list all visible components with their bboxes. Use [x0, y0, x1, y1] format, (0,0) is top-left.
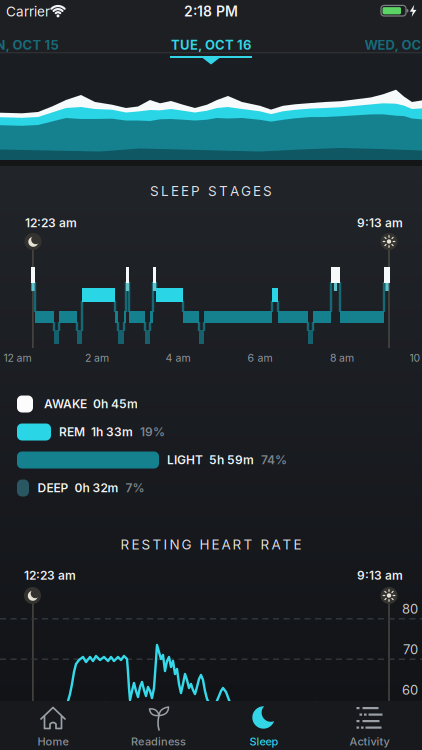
staticText: DEEP 0h 32m: [37, 481, 118, 495]
staticText: 2 am: [85, 352, 109, 364]
staticText: Activity: [349, 735, 389, 748]
button[interactable]: Activity: [317, 701, 422, 750]
staticText: Readiness: [131, 735, 186, 748]
staticText: LIGHT 5h 59m: [167, 453, 254, 467]
staticText: 10 am: [409, 352, 422, 364]
staticText: 80: [402, 601, 418, 617]
staticText: R E S T I N G H E A R T R A T E: [120, 536, 301, 553]
staticText: 4 am: [165, 352, 190, 364]
staticText: MON, OCT 15: [0, 37, 58, 53]
staticText: 2:18 PM: [184, 3, 238, 20]
staticText: 12 am: [3, 352, 31, 364]
staticText: Home: [37, 735, 68, 748]
staticText: 60: [402, 682, 418, 698]
staticText: Carrier: [6, 3, 50, 20]
staticText: Sleep: [249, 735, 278, 748]
staticText: 6 am: [247, 352, 272, 364]
staticText: 70: [403, 642, 418, 657]
staticText: 9:13 am: [357, 216, 403, 230]
staticText: 12:23 am: [24, 568, 76, 583]
staticText: S L E E P S T A G E S: [150, 183, 272, 199]
button[interactable]: Home: [0, 701, 105, 750]
staticText: 9:13 am: [357, 568, 403, 583]
button[interactable]: Readiness: [106, 701, 211, 750]
staticText: 8 am: [330, 352, 354, 364]
staticText: REM 1h 33m: [59, 425, 133, 439]
staticText: AWAKE 0h 45m: [44, 397, 138, 411]
staticText: 12:23 am: [25, 216, 77, 230]
button[interactable]: WED, OCT 17: [364, 37, 422, 53]
staticText: WED, OCT 17: [364, 37, 422, 53]
button[interactable]: MON, OCT 15: [0, 37, 58, 53]
staticText: 74%: [261, 453, 287, 467]
staticText: TUE, OCT 16: [171, 37, 251, 53]
button[interactable]: TUE, OCT 16: [171, 37, 251, 53]
button[interactable]: Sleep: [211, 701, 316, 750]
staticText: 7%: [125, 481, 144, 495]
staticText: 19%: [140, 425, 165, 439]
